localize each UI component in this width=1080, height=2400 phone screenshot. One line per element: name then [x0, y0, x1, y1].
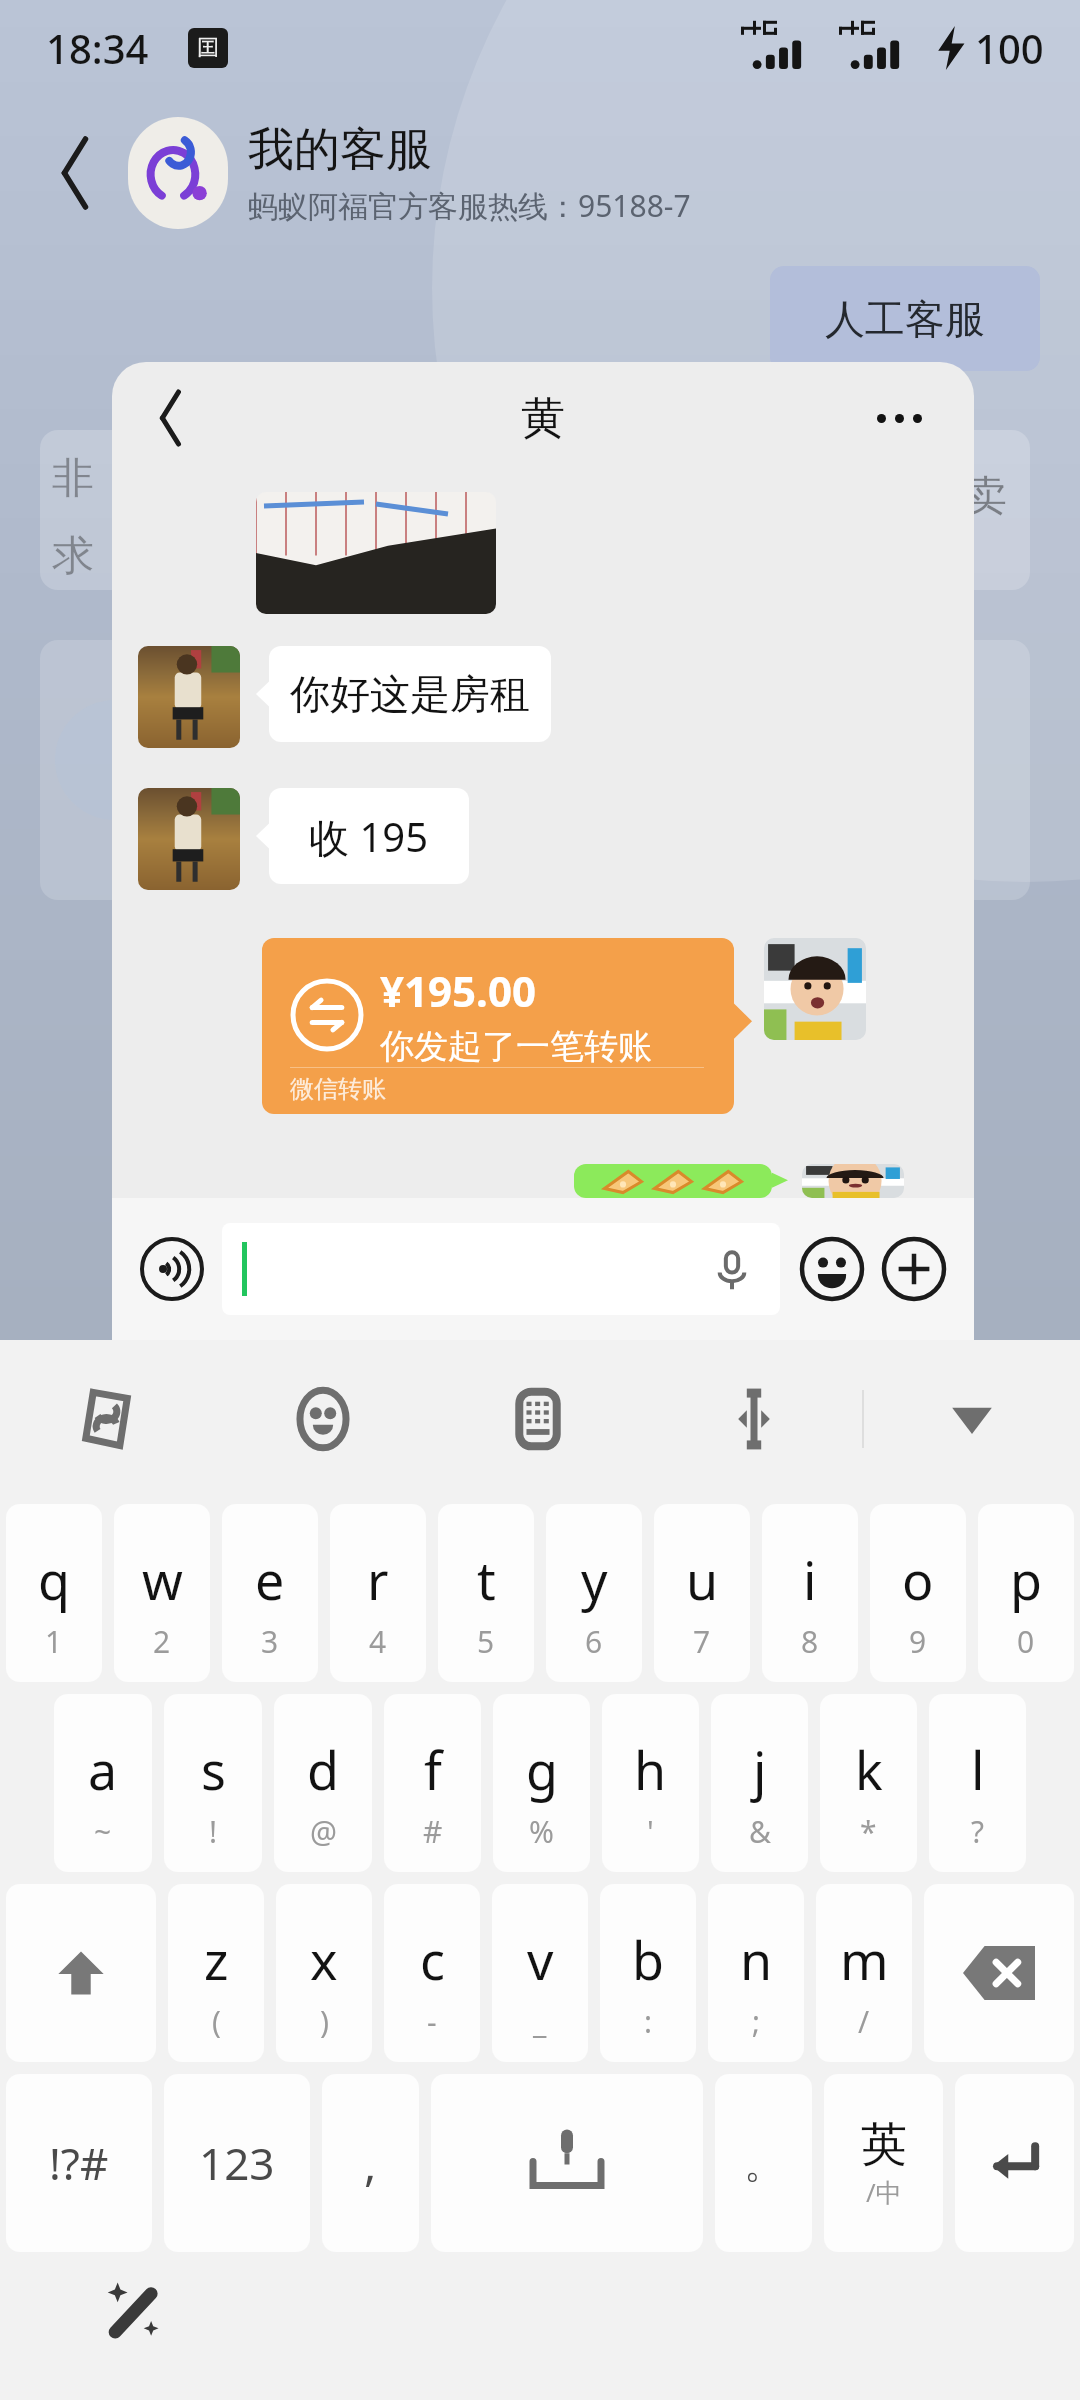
staticText: 3 [261, 1621, 279, 1662]
staticText: k [855, 1734, 883, 1805]
staticText: !?# [49, 2133, 109, 2193]
button[interactable]: Voice input [136, 1233, 208, 1305]
staticText: 8 [801, 1621, 819, 1662]
staticText: z [204, 1924, 229, 1995]
staticText: 非 [52, 452, 94, 505]
button[interactable]: b [600, 1884, 696, 2062]
button[interactable]: Emoji [215, 1340, 430, 1498]
button[interactable]: g [493, 1694, 590, 1872]
button[interactable]: More [878, 1233, 950, 1305]
staticText: b [632, 1924, 664, 1995]
staticText: _ [533, 2001, 547, 2042]
staticText: p [1010, 1544, 1042, 1615]
button[interactable] [128, 117, 228, 229]
button[interactable]: r [330, 1504, 426, 1682]
staticText: 求 [52, 530, 94, 583]
button[interactable]: Back [140, 383, 210, 453]
staticText: 微信转账 [290, 1074, 386, 1104]
button[interactable]: f [384, 1694, 481, 1872]
button[interactable]: a [54, 1694, 152, 1872]
button[interactable] [222, 1223, 780, 1315]
button[interactable]: y [546, 1504, 642, 1682]
staticText: ( [212, 2001, 221, 2042]
button[interactable]: Enter [955, 2074, 1074, 2252]
button[interactable]: 收 195 [269, 788, 469, 884]
staticText: ~ [94, 1811, 112, 1852]
staticText: 。 [744, 2138, 784, 2188]
button[interactable]: 。 [715, 2074, 812, 2252]
staticText: n [740, 1924, 773, 1995]
button[interactable]: j [711, 1694, 808, 1872]
button[interactable]: t [438, 1504, 534, 1682]
button[interactable]: ¥195.00 [262, 938, 734, 1114]
button[interactable]: l [929, 1694, 1026, 1872]
button[interactable]: o [870, 1504, 966, 1682]
button[interactable]: w [114, 1504, 210, 1682]
button[interactable]: Cursor move [646, 1340, 862, 1498]
button[interactable]: More options [864, 383, 934, 453]
staticText: ¥195.00 [380, 962, 536, 1019]
button[interactable]: v [492, 1884, 588, 2062]
staticText: u [686, 1544, 719, 1615]
button[interactable]: c [384, 1884, 480, 2062]
button[interactable]: k [820, 1694, 917, 1872]
button[interactable]: , [322, 2074, 419, 2252]
staticText: / [858, 2001, 870, 2042]
button[interactable]: e [222, 1504, 318, 1682]
staticText: r [367, 1544, 389, 1615]
staticText: 卖 [965, 470, 1007, 523]
staticText: ' [647, 1811, 654, 1852]
staticText: 6 [585, 1621, 603, 1662]
staticText: a [88, 1734, 118, 1805]
button[interactable]: i [762, 1504, 858, 1682]
button[interactable]: 你好这是房租 [269, 646, 551, 742]
button[interactable]: m [816, 1884, 912, 2062]
button[interactable]: !?# [6, 2074, 152, 2252]
staticText: % [529, 1811, 554, 1852]
staticText: ) [320, 2001, 329, 2042]
button[interactable]: Hide keyboard [864, 1340, 1080, 1498]
button[interactable] [574, 1164, 772, 1198]
staticText: 我的客服 [248, 121, 432, 179]
button[interactable]: AI assist [96, 2272, 174, 2350]
button[interactable]: u [654, 1504, 750, 1682]
staticText: 1 [45, 1621, 63, 1662]
staticText: m [840, 1924, 889, 1995]
button[interactable]: Space, voice input [431, 2074, 703, 2252]
button[interactable]: s [164, 1694, 262, 1872]
button[interactable]: 英 [824, 2074, 943, 2252]
button[interactable]: Shift [6, 1884, 156, 2062]
button[interactable]: Sogou input [0, 1340, 215, 1498]
staticText: 7 [693, 1621, 711, 1662]
staticText: y [581, 1544, 608, 1615]
button[interactable]: h [602, 1694, 699, 1872]
staticText: 2 [153, 1621, 171, 1662]
staticText: 英 [861, 2116, 907, 2174]
staticText: 100 [975, 21, 1044, 75]
staticText: , [364, 2132, 377, 2195]
staticText: c [420, 1924, 445, 1995]
staticText: w [142, 1544, 183, 1615]
button[interactable]: q [6, 1504, 102, 1682]
button[interactable]: d [274, 1694, 372, 1872]
staticText: d [307, 1734, 339, 1805]
button[interactable]: 123 [164, 2074, 310, 2252]
button[interactable]: n [708, 1884, 804, 2062]
button[interactable]: x [276, 1884, 372, 2062]
staticText: j [753, 1734, 767, 1805]
button[interactable]: 人工客服 [770, 266, 1040, 371]
button[interactable]: Back [36, 128, 126, 218]
staticText: s [201, 1734, 226, 1805]
button[interactable]: z [168, 1884, 264, 2062]
staticText: x [310, 1924, 338, 1995]
button[interactable]: Emoji [796, 1233, 868, 1305]
button[interactable]: p [978, 1504, 1074, 1682]
staticText: q [38, 1544, 70, 1615]
button[interactable]: Backspace [924, 1884, 1074, 2062]
staticText: - [427, 2001, 437, 2042]
staticText: & [749, 1811, 771, 1852]
staticText: 收 195 [309, 809, 429, 864]
staticText: /中 [866, 2174, 902, 2210]
button[interactable]: Keyboard layout [430, 1340, 646, 1498]
staticText: 黄 [521, 391, 565, 446]
